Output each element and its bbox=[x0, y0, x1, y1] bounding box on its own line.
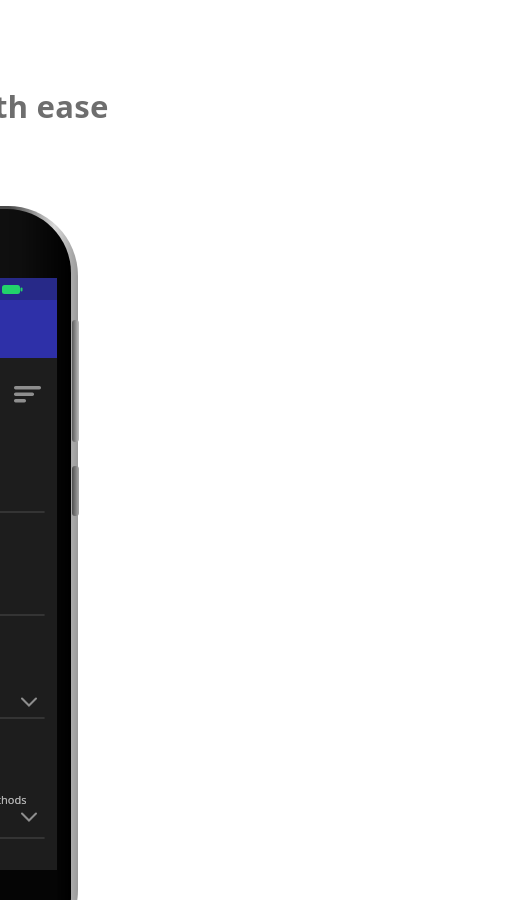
staticText: th ease bbox=[0, 85, 109, 127]
staticText: thods bbox=[0, 792, 27, 807]
button[interactable]: Expand payment methods bbox=[0, 719, 57, 838]
button[interactable]: Expand section bbox=[0, 616, 57, 718]
button[interactable]: Sort bbox=[0, 358, 57, 418]
